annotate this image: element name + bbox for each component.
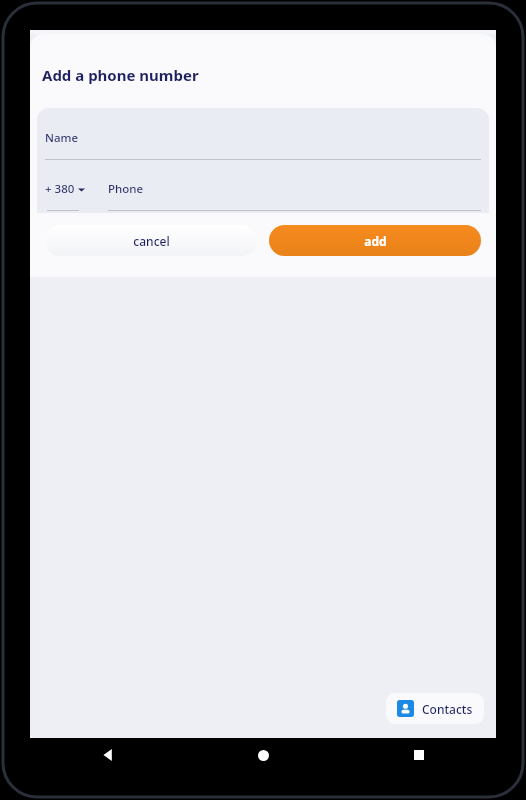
staticText: Name bbox=[45, 130, 78, 146]
button[interactable]: Back bbox=[30, 738, 186, 772]
button[interactable]: cancel bbox=[45, 225, 257, 256]
staticText: cancel bbox=[133, 233, 170, 249]
staticText: add bbox=[364, 233, 387, 249]
button[interactable]: + 380 bbox=[45, 181, 97, 211]
staticText: + 380 bbox=[45, 181, 75, 197]
button[interactable]: Recent apps bbox=[341, 738, 496, 772]
other: Contacts icon bbox=[397, 700, 414, 717]
staticText: Phone bbox=[108, 181, 144, 197]
staticText: Contacts bbox=[422, 701, 473, 717]
button[interactable]: Home bbox=[186, 738, 341, 772]
button[interactable]: Contacts icon bbox=[386, 693, 484, 724]
button[interactable]: Phone bbox=[108, 181, 481, 211]
button[interactable]: add bbox=[269, 225, 481, 256]
button[interactable]: Name bbox=[37, 130, 489, 160]
staticText: Add a phone number bbox=[42, 65, 199, 85]
